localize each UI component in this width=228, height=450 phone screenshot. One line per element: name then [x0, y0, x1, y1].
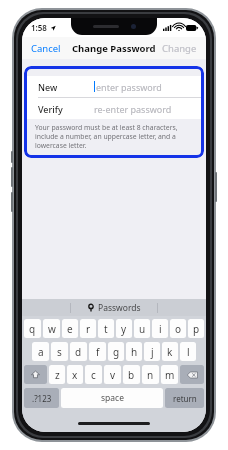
button[interactable]: a [32, 342, 49, 361]
staticText: New [38, 81, 58, 93]
button[interactable]: g [108, 342, 124, 361]
button[interactable]: Verify [27, 98, 201, 119]
staticText: e [67, 322, 73, 336]
button[interactable]: j [144, 342, 160, 361]
button[interactable]: k [162, 342, 178, 361]
staticText: k [167, 345, 173, 359]
button[interactable]: p [188, 319, 204, 338]
staticText: t [104, 322, 108, 336]
button[interactable]: New [27, 76, 201, 97]
staticText: l [187, 345, 190, 359]
button[interactable]: Change [159, 40, 200, 57]
button[interactable]: .?123 [24, 388, 59, 408]
staticText: z [55, 368, 60, 382]
button[interactable]: s [51, 342, 68, 361]
button[interactable]: w [43, 319, 60, 338]
staticText: r [86, 322, 91, 336]
button[interactable]: space [61, 388, 163, 408]
staticText: 1:58 [31, 22, 47, 33]
staticText: Verify [38, 103, 63, 115]
button[interactable]: b [123, 365, 140, 384]
staticText: h [131, 345, 138, 359]
staticText: b [128, 368, 135, 382]
staticText: g [113, 345, 120, 359]
staticText: w [48, 322, 56, 336]
staticText: j [151, 345, 154, 359]
button[interactable]: d [70, 342, 87, 361]
button[interactable]: r [80, 319, 96, 338]
staticText: f [96, 345, 100, 359]
staticText: d [75, 345, 82, 359]
staticText: o [175, 322, 182, 336]
button[interactable]: Passwords [87, 302, 141, 314]
staticText: Change Password [72, 42, 156, 55]
staticText: re-enter password [94, 103, 172, 115]
staticText: y [121, 322, 127, 336]
staticText: m [165, 368, 175, 382]
button[interactable]: m [161, 365, 178, 384]
staticText: x [72, 368, 78, 382]
staticText: s [57, 345, 62, 359]
button[interactable]: Shift [24, 365, 47, 384]
staticText: .?123 [32, 393, 52, 404]
staticText: Passwords [98, 302, 141, 314]
button[interactable]: h [126, 342, 142, 361]
staticText: c [91, 368, 96, 382]
staticText: u [139, 322, 146, 336]
button[interactable]: Backspace [180, 365, 204, 384]
button[interactable]: c [85, 365, 102, 384]
button[interactable]: z [49, 365, 65, 384]
button[interactable]: x [67, 365, 83, 384]
staticText: n [147, 368, 154, 382]
staticText: q [29, 322, 36, 336]
button[interactable]: q [24, 319, 41, 338]
staticText: return [173, 393, 197, 404]
staticText: p [193, 322, 200, 336]
staticText: a [38, 345, 44, 359]
staticText: space [101, 392, 124, 404]
button[interactable]: f [89, 342, 106, 361]
button[interactable]: u [134, 319, 150, 338]
staticText: Cancel [31, 42, 61, 55]
button[interactable]: return [165, 388, 204, 408]
button[interactable]: o [170, 319, 186, 338]
button[interactable]: l [180, 342, 196, 361]
staticText: i [159, 322, 162, 336]
button[interactable]: Cancel [28, 40, 64, 57]
staticText: Change [162, 42, 197, 55]
staticText: enter password [96, 81, 162, 93]
button[interactable]: y [116, 319, 132, 338]
button[interactable]: t [98, 319, 114, 338]
staticText: v [110, 368, 116, 382]
button[interactable]: n [142, 365, 159, 384]
button[interactable]: e [62, 319, 78, 338]
button[interactable]: v [104, 365, 121, 384]
button[interactable]: i [152, 319, 168, 338]
staticText: Your password must be at least 8 charact… [35, 123, 193, 150]
